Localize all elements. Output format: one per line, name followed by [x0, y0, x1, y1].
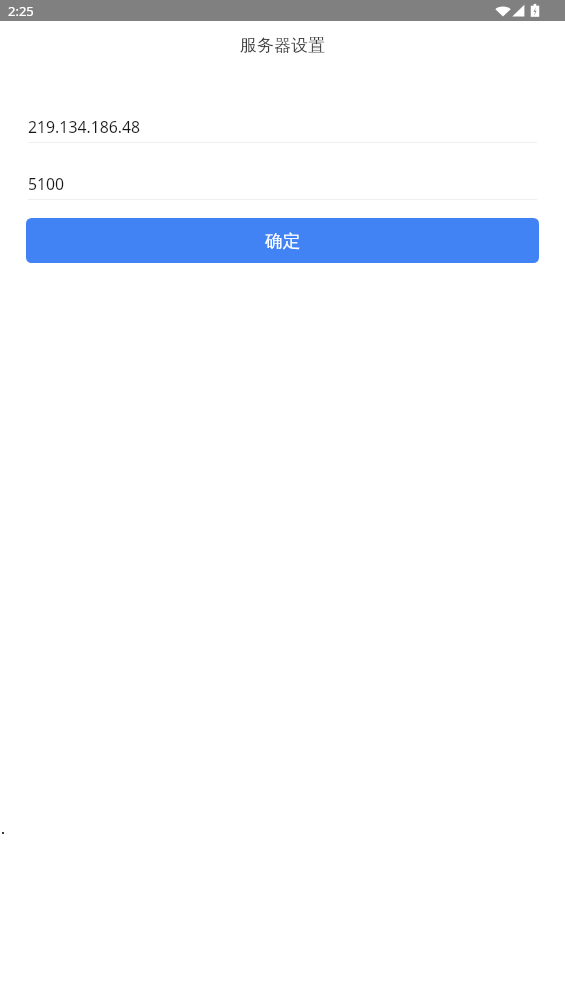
- button[interactable]: 219.134.186.48: [0, 88, 565, 148]
- other: Wi-Fi: [495, 4, 511, 17]
- staticText: 219.134.186.48: [28, 116, 141, 138]
- staticText: 5100: [28, 173, 65, 195]
- other: Mobile signal: [512, 4, 525, 17]
- staticText: 2:25: [8, 2, 34, 20]
- other: Battery charging: [529, 3, 540, 18]
- button[interactable]: 确定: [26, 218, 539, 263]
- button[interactable]: 5100: [0, 145, 565, 205]
- staticText: 确定: [265, 230, 300, 252]
- staticText: 服务器设置: [240, 35, 325, 56]
